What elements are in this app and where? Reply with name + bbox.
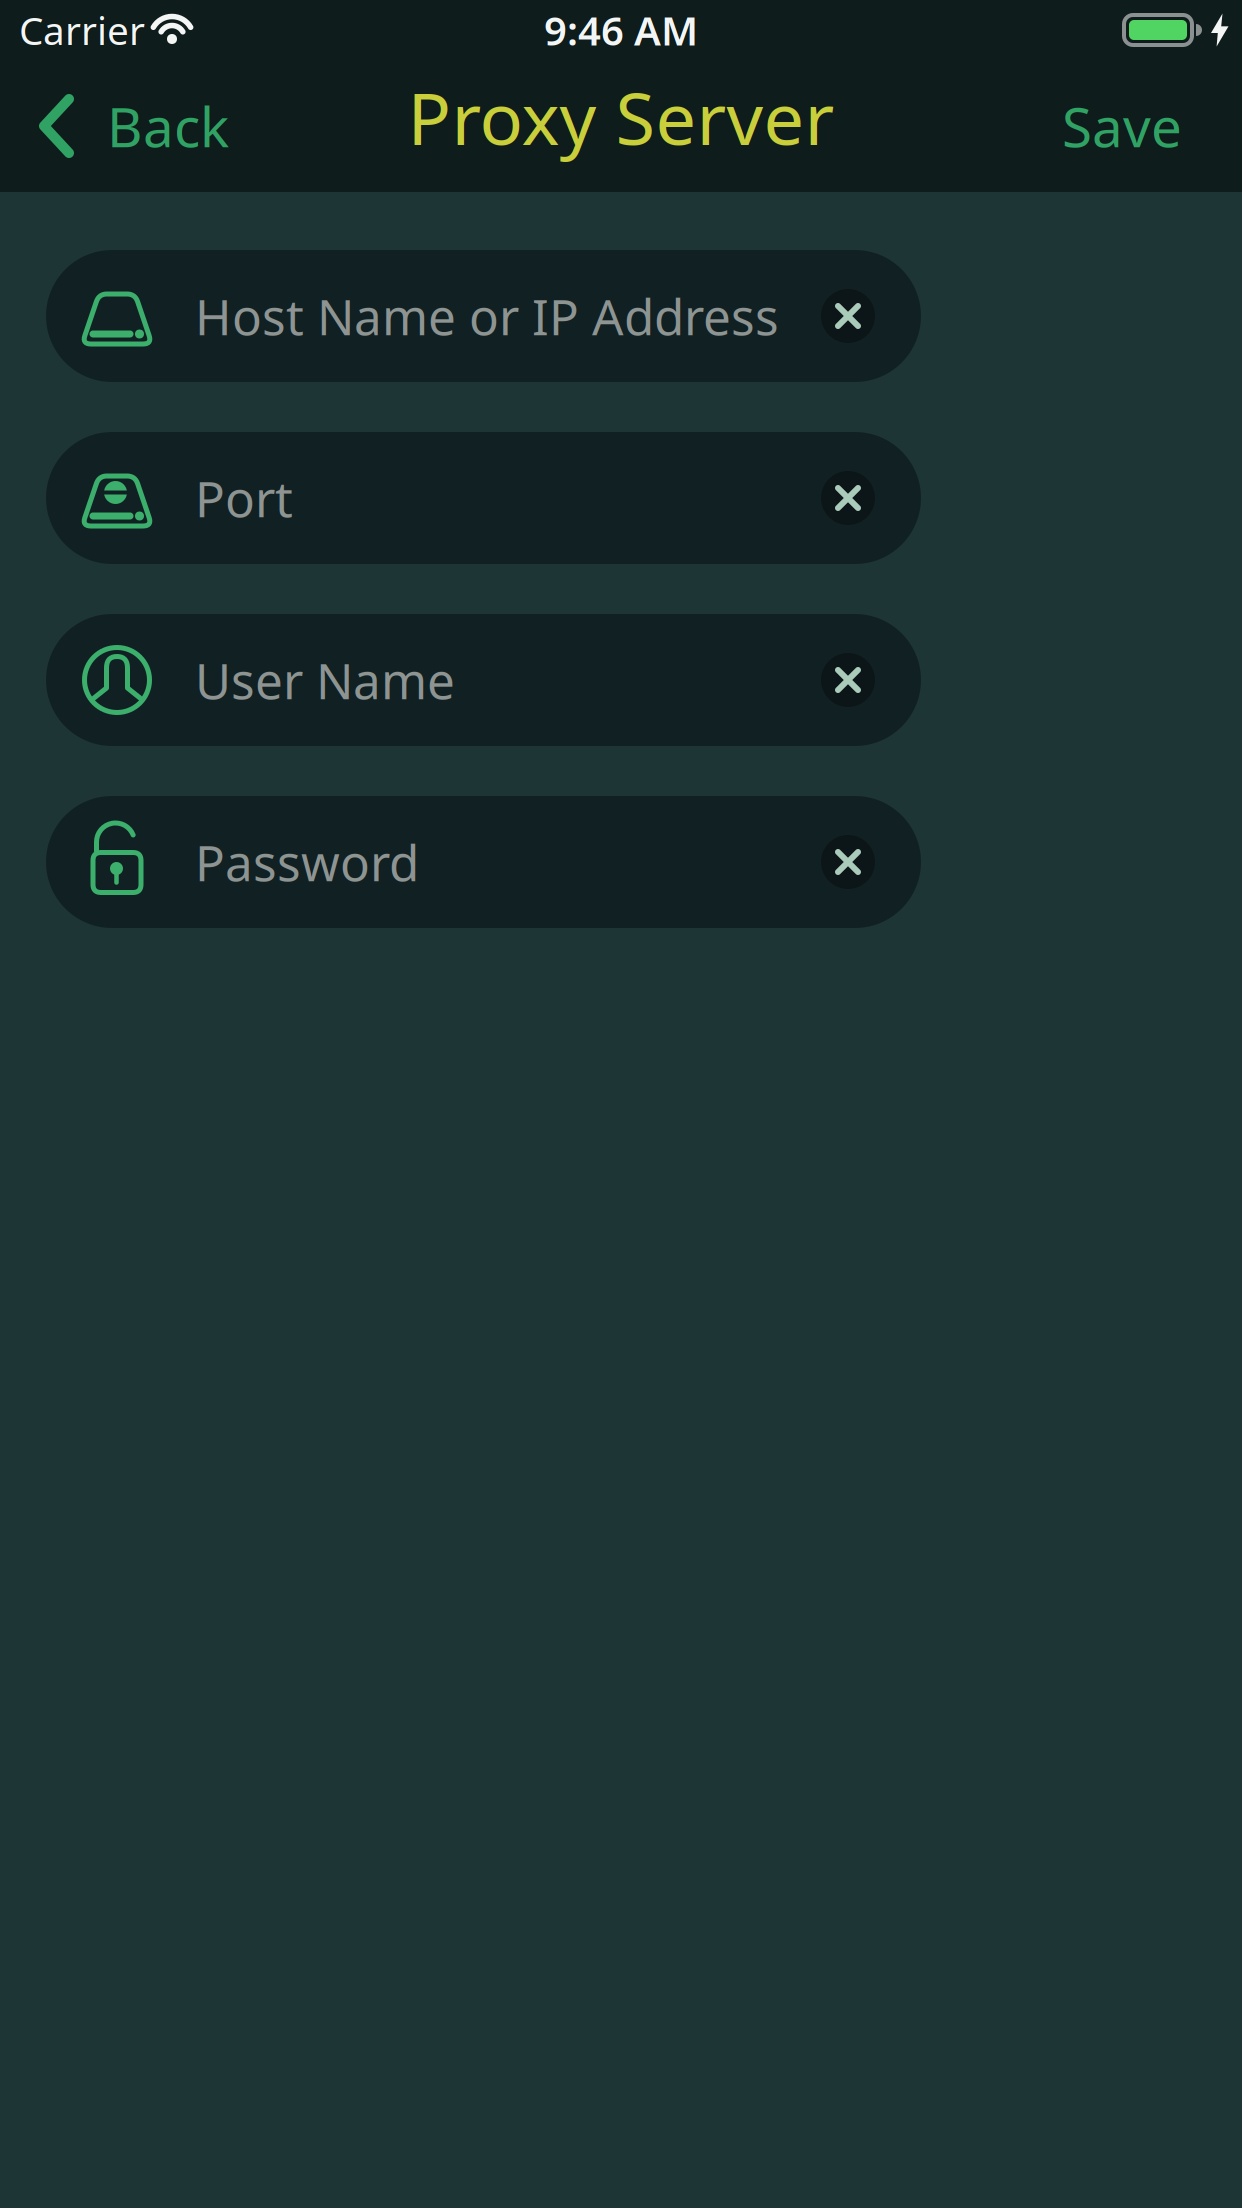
- staticText: Back: [107, 90, 229, 162]
- staticText: Port: [195, 465, 293, 531]
- staticText: User Name: [195, 647, 455, 713]
- staticText: Save: [1062, 90, 1182, 162]
- button[interactable]: Clear text: [821, 653, 875, 707]
- staticText: 9:46 AM: [544, 3, 698, 56]
- button[interactable]: Back: [0, 90, 229, 162]
- button[interactable]: Clear text: [821, 289, 875, 343]
- button[interactable]: Password: [46, 796, 921, 928]
- button[interactable]: Port: [46, 432, 921, 564]
- staticText: Carrier: [19, 4, 145, 56]
- button[interactable]: Save: [1062, 90, 1242, 162]
- button[interactable]: User Name: [46, 614, 921, 746]
- button[interactable]: Clear text: [821, 471, 875, 525]
- button[interactable]: Clear text: [821, 835, 875, 889]
- staticText: Host Name or IP Address: [195, 283, 779, 349]
- button[interactable]: Host Name or IP Address: [46, 250, 921, 382]
- staticText: Password: [195, 829, 419, 895]
- staticText: Proxy Server: [407, 69, 834, 165]
